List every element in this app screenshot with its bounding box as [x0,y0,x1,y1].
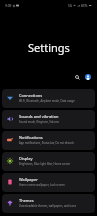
staticText: Themes [19,198,34,203]
button[interactable]: Sounds and vibration [2,110,95,129]
staticText: Display [19,156,33,161]
button[interactable]: Account [85,74,91,80]
staticText: Notifications [19,135,43,140]
staticText: Connections [19,93,43,98]
staticText: Wi-Fi, Bluetooth, Airplane mode, Data us… [19,99,75,103]
staticText: 5G [68,4,72,8]
staticText: Wallpaper [19,177,38,182]
staticText: Sound mode, Ringtone, Volume [19,120,59,124]
button[interactable]: Themes [2,194,95,213]
staticText: Brightness, Blue light filter, Home scre… [19,162,71,166]
staticText: Settings [28,40,70,55]
staticText: 9:09 [5,4,12,8]
button[interactable]: Search [72,72,82,82]
staticText: Home screen wallpaper, Lock screen [19,183,65,187]
staticText: Sounds and vibration [19,114,59,119]
button[interactable]: Notifications [2,131,95,150]
staticText: 83% [81,4,88,8]
staticText: Downloadable themes, wallpapers, and ico… [19,204,76,208]
staticText: App notifications, Status bar, Do not di… [19,141,74,145]
button[interactable]: Connections [2,89,95,108]
button[interactable]: Wallpaper [2,173,95,192]
button[interactable]: Display [2,152,95,171]
